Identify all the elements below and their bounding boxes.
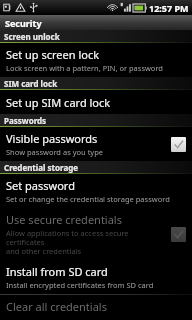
staticText: Use secure credentials <box>6 212 122 227</box>
staticText: 12:57 PM <box>149 2 189 14</box>
button[interactable]: Clear all credentials <box>0 295 192 320</box>
staticText: Set password <box>6 178 75 193</box>
staticText: Credential storage <box>4 162 79 173</box>
staticText: Install from SD card <box>6 264 108 279</box>
staticText: Clear all credentials <box>6 299 107 314</box>
button[interactable]: Set password <box>0 174 192 208</box>
staticText: Screen unlock <box>4 31 60 42</box>
button[interactable]: Install from SD card <box>0 260 192 294</box>
staticText: Set or change the credential storage pas… <box>6 194 170 204</box>
staticText: Show password as you type <box>6 147 104 157</box>
button[interactable]: Use secure credentials <box>0 208 192 260</box>
button[interactable]: Toggle <box>171 227 186 242</box>
staticText: Visible passwords <box>6 131 98 146</box>
button[interactable]: Set up screen lock <box>0 43 192 77</box>
staticText: SIM card lock <box>4 78 58 89</box>
staticText: Set up SIM card lock <box>6 95 111 110</box>
button[interactable]: Toggle <box>171 137 186 152</box>
staticText: Passwords <box>4 115 47 126</box>
button[interactable]: Set up SIM card lock <box>0 90 192 114</box>
staticText: Install encrypted certificates from SD c… <box>6 280 154 290</box>
staticText: Allow applications to access secure cert… <box>6 228 167 256</box>
staticText: Lock screen with a pattern, PIN, or pass… <box>6 63 163 73</box>
button[interactable]: Visible passwords <box>0 127 192 161</box>
staticText: Set up screen lock <box>6 47 100 62</box>
staticText: Security <box>5 17 42 29</box>
